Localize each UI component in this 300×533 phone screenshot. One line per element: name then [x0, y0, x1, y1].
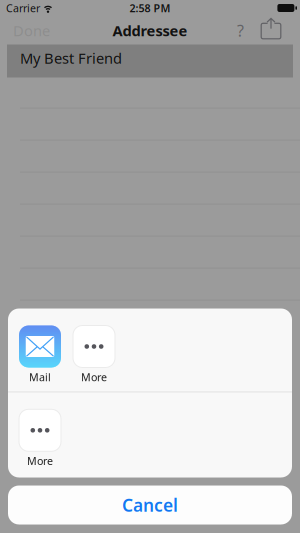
staticText: Addressee [112, 21, 187, 40]
staticText: Mail [29, 370, 51, 384]
staticText: More [81, 370, 107, 384]
staticText: ? [237, 20, 244, 41]
button[interactable]: Share [244, 17, 300, 39]
staticText: More [27, 454, 53, 468]
button[interactable]: Help [237, 20, 244, 41]
button[interactable]: Mail [19, 325, 61, 384]
staticText: Carrier [6, 1, 40, 15]
button[interactable]: Done [0, 21, 50, 40]
staticText: My Best Friend [20, 48, 122, 68]
staticText: 2:58 PM [129, 1, 170, 15]
button[interactable]: My Best Friend [7, 44, 293, 77]
button[interactable]: More [19, 409, 61, 468]
button[interactable]: More [73, 325, 115, 384]
staticText: Done [13, 21, 50, 40]
staticText: Cancel [122, 493, 178, 516]
button[interactable]: Cancel [8, 485, 292, 524]
